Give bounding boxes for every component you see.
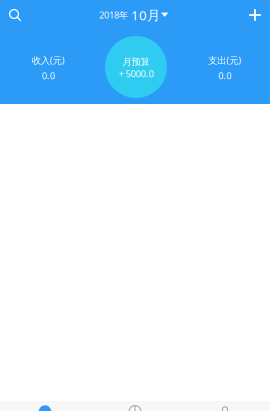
staticText: + 5000.0: [118, 67, 153, 80]
staticText: 0.0: [218, 69, 231, 82]
button[interactable]: 月预算: [105, 36, 167, 98]
staticText: 2018年: [99, 9, 128, 21]
button[interactable]: 2018年: [100, 1, 170, 29]
staticText: 月预算: [122, 56, 149, 68]
button[interactable]: 明细: [0, 405, 90, 411]
staticText: 支出(元): [208, 54, 241, 66]
staticText: 收入(元): [32, 54, 65, 66]
button[interactable]: 图表: [90, 405, 180, 411]
button[interactable]: Search: [2, 1, 28, 29]
button[interactable]: Add: [242, 1, 268, 29]
staticText: 0.0: [42, 69, 55, 82]
staticText: 10月: [131, 6, 160, 24]
button[interactable]: 我的: [180, 405, 270, 411]
